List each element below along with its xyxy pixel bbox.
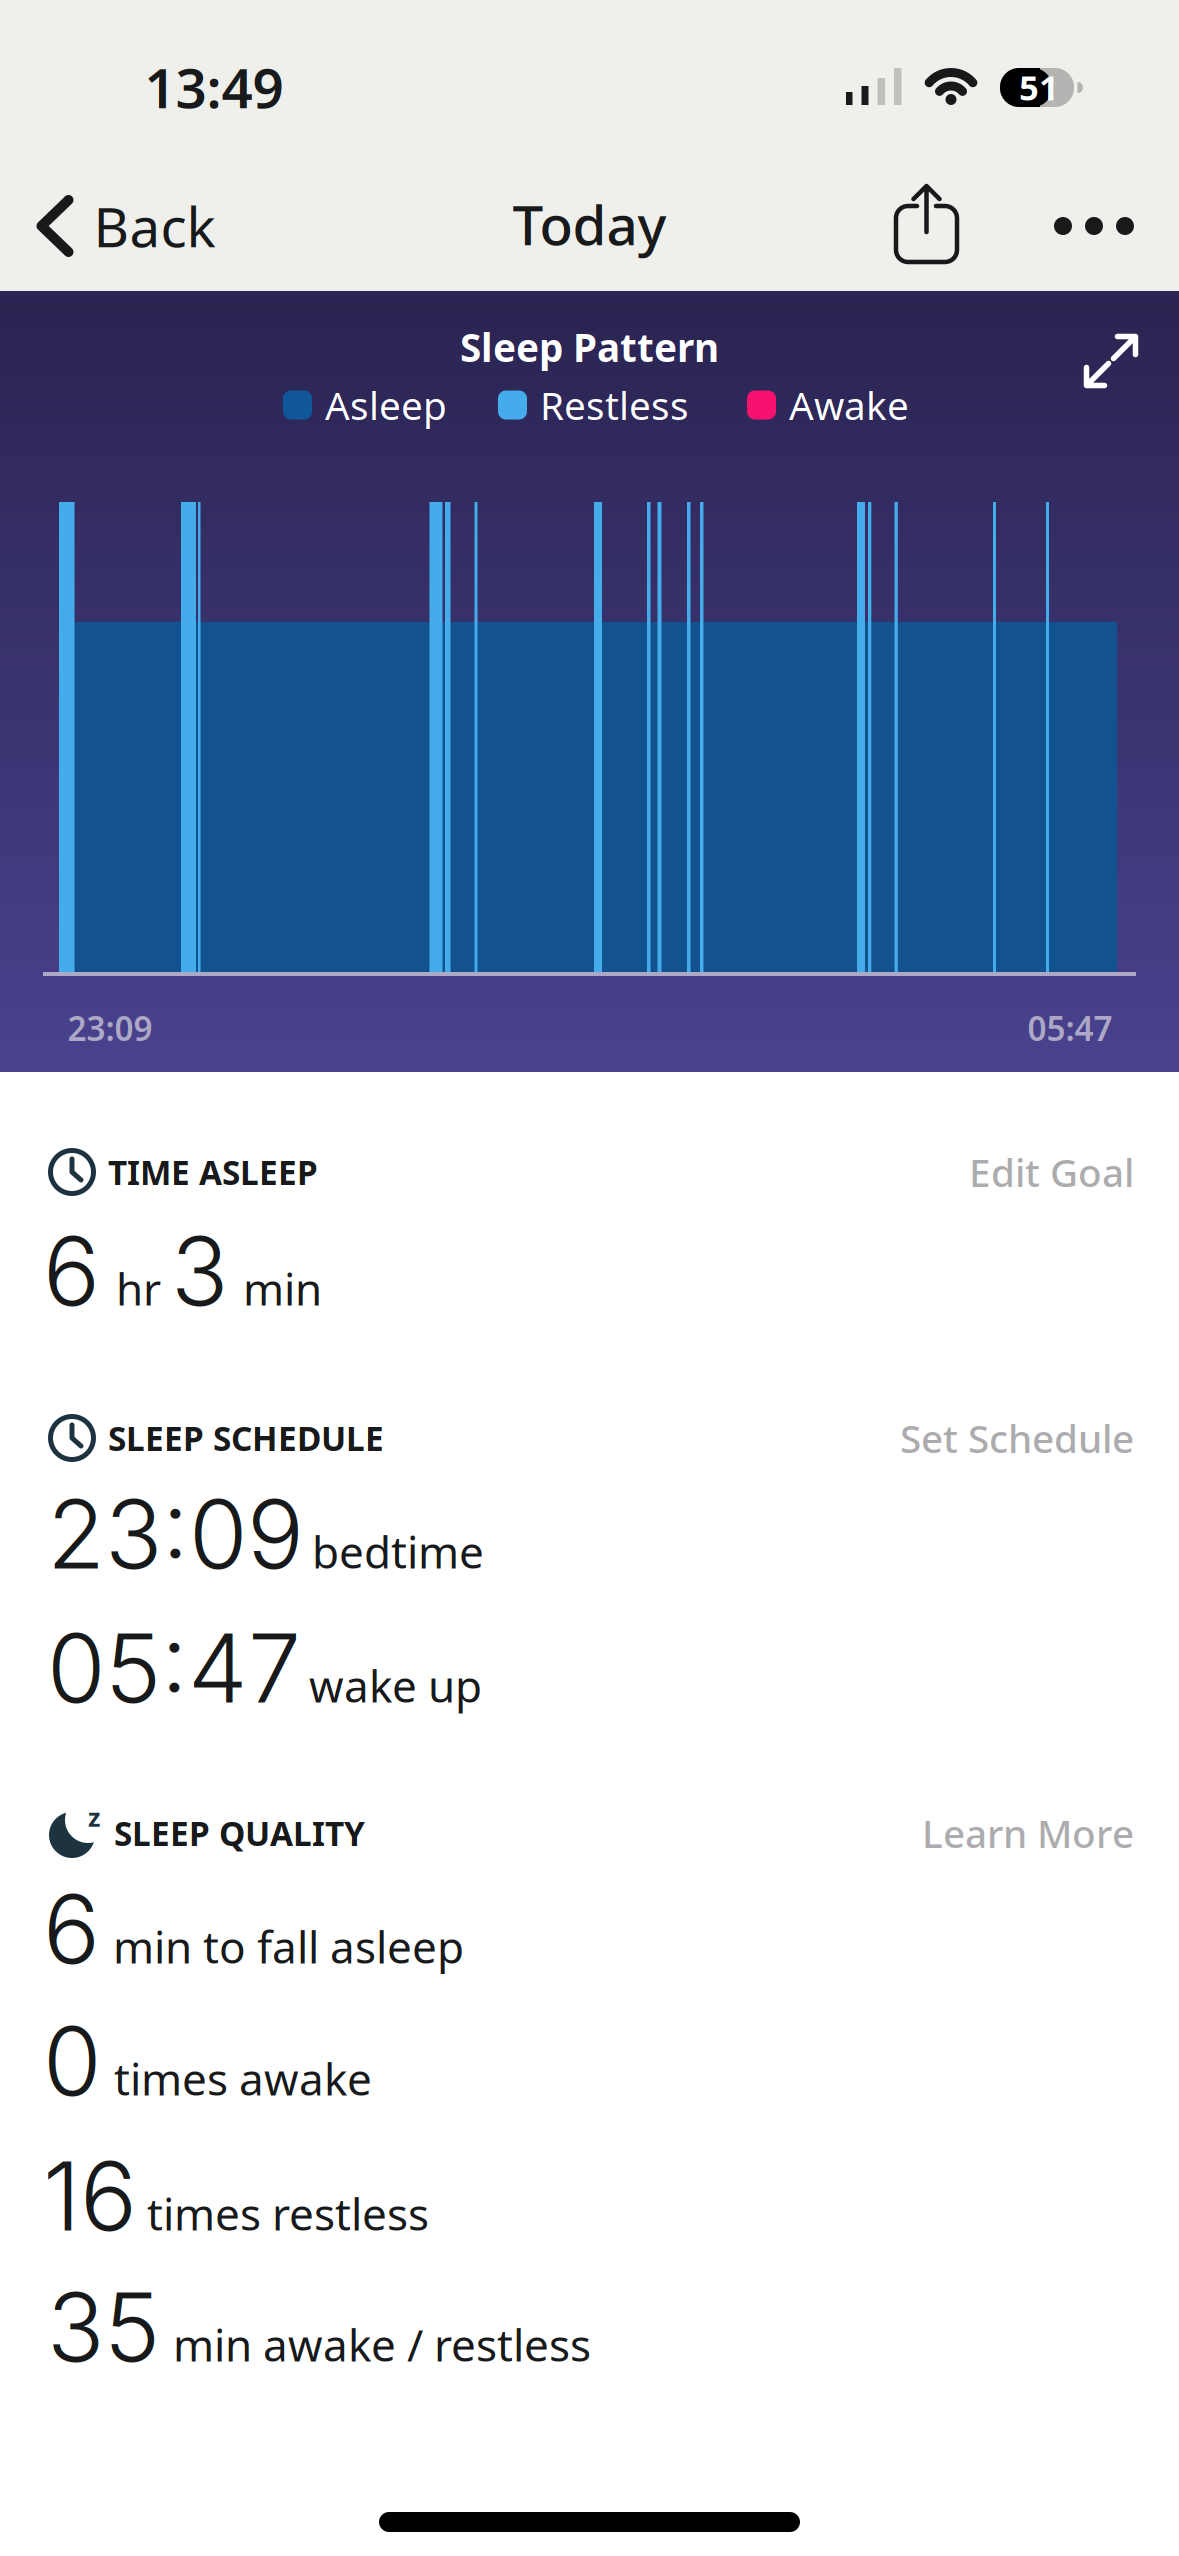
staticText: SLEEP QUALITY — [114, 1811, 365, 1855]
button[interactable]: Set Schedule — [900, 1412, 1134, 1464]
staticText: 3 — [171, 1214, 228, 1328]
button[interactable]: Share — [894, 182, 958, 266]
staticText: times restless — [147, 2184, 429, 2242]
staticText: Restless — [540, 379, 689, 431]
button[interactable]: Edit Goal — [969, 1146, 1134, 1198]
button[interactable]: Expand chart — [1082, 332, 1139, 389]
staticText: TIME ASLEEP — [108, 1150, 318, 1194]
staticText: 13:49 — [144, 51, 283, 123]
staticText: Asleep — [325, 379, 447, 431]
staticText: Awake — [789, 379, 909, 431]
staticText: 35 — [47, 2270, 160, 2384]
staticText: 05:47 — [47, 1611, 301, 1725]
staticText: 16 — [43, 2139, 137, 2253]
staticText: bedtime — [312, 1522, 484, 1580]
staticText: times awake — [114, 2049, 372, 2107]
staticText: Sleep Pattern — [460, 321, 719, 373]
staticText: 6 — [43, 1872, 100, 1986]
staticText: 23:09 — [47, 1477, 304, 1591]
staticText: 6 — [43, 1214, 100, 1328]
staticText: 51 — [1019, 64, 1059, 110]
staticText: Today — [512, 188, 666, 260]
staticText: Back — [93, 190, 215, 262]
staticText: 05:47 — [1027, 1006, 1112, 1050]
button[interactable]: More — [1044, 191, 1144, 261]
staticText: z — [88, 1800, 100, 1834]
staticText: hr — [116, 1259, 161, 1317]
staticText: wake up — [309, 1656, 482, 1714]
staticText: Set Schedule — [900, 1412, 1134, 1464]
staticText: min to fall asleep — [113, 1917, 464, 1975]
button[interactable]: Back — [32, 190, 215, 262]
button[interactable]: Learn More — [922, 1807, 1134, 1859]
staticText: SLEEP SCHEDULE — [108, 1416, 384, 1460]
staticText: 23:09 — [67, 1006, 152, 1050]
staticText: min — [243, 1259, 322, 1317]
staticText: Edit Goal — [969, 1146, 1134, 1198]
staticText: Learn More — [922, 1807, 1134, 1859]
staticText: min awake / restless — [173, 2315, 591, 2373]
staticText: 0 — [43, 2004, 101, 2118]
